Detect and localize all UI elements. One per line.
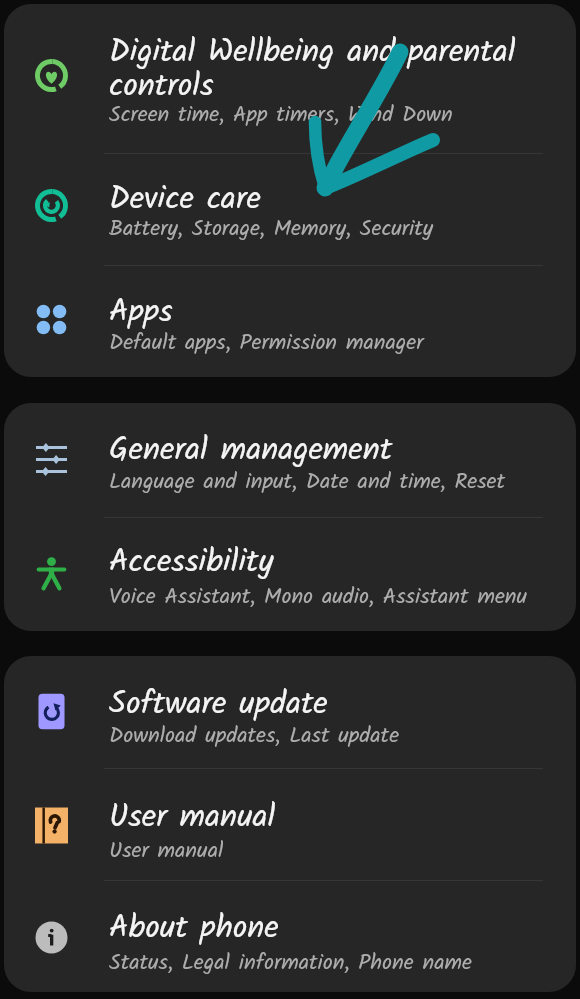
staticText: Voice Assistant, Mono audio, Assistant m… — [109, 580, 549, 615]
staticText: Accessibility — [109, 537, 521, 588]
button[interactable]: About phone — [4, 880, 576, 992]
staticText: Software update — [109, 679, 521, 730]
button[interactable]: Device care — [4, 153, 576, 265]
staticText: Digital Wellbeing and parental controls — [109, 27, 521, 112]
other: Device care — [35, 189, 68, 222]
button[interactable]: Apps — [4, 265, 576, 377]
staticText: User manual — [109, 834, 549, 869]
staticText: Status, Legal information, Phone name — [109, 946, 549, 981]
staticText: General management — [109, 425, 521, 476]
button[interactable]: Digital Wellbeing — [4, 4, 576, 153]
staticText: Screen time, App timers, Wind Down — [109, 98, 549, 133]
other: Digital Wellbeing — [35, 59, 68, 92]
staticText: User manual — [109, 792, 521, 843]
other: General management — [35, 443, 68, 476]
staticText: About phone — [109, 903, 521, 954]
other: Software update — [35, 695, 68, 728]
button[interactable]: Accessibility — [4, 517, 576, 631]
other: Accessibility — [35, 557, 68, 590]
staticText: Battery, Storage, Memory, Security — [109, 212, 549, 247]
staticText: Language and input, Date and time, Reset — [109, 465, 549, 500]
button[interactable]: Software update — [4, 656, 576, 768]
staticText: Default apps, Permission manager — [109, 326, 549, 361]
staticText: Download updates, Last update — [109, 719, 549, 754]
staticText: Apps — [109, 287, 521, 338]
other: About phone — [35, 921, 68, 954]
other: Apps — [35, 303, 68, 336]
other: User manual — [35, 809, 68, 842]
button[interactable]: General management — [4, 403, 576, 517]
button[interactable]: User manual — [4, 768, 576, 880]
staticText: Device care — [109, 174, 521, 225]
